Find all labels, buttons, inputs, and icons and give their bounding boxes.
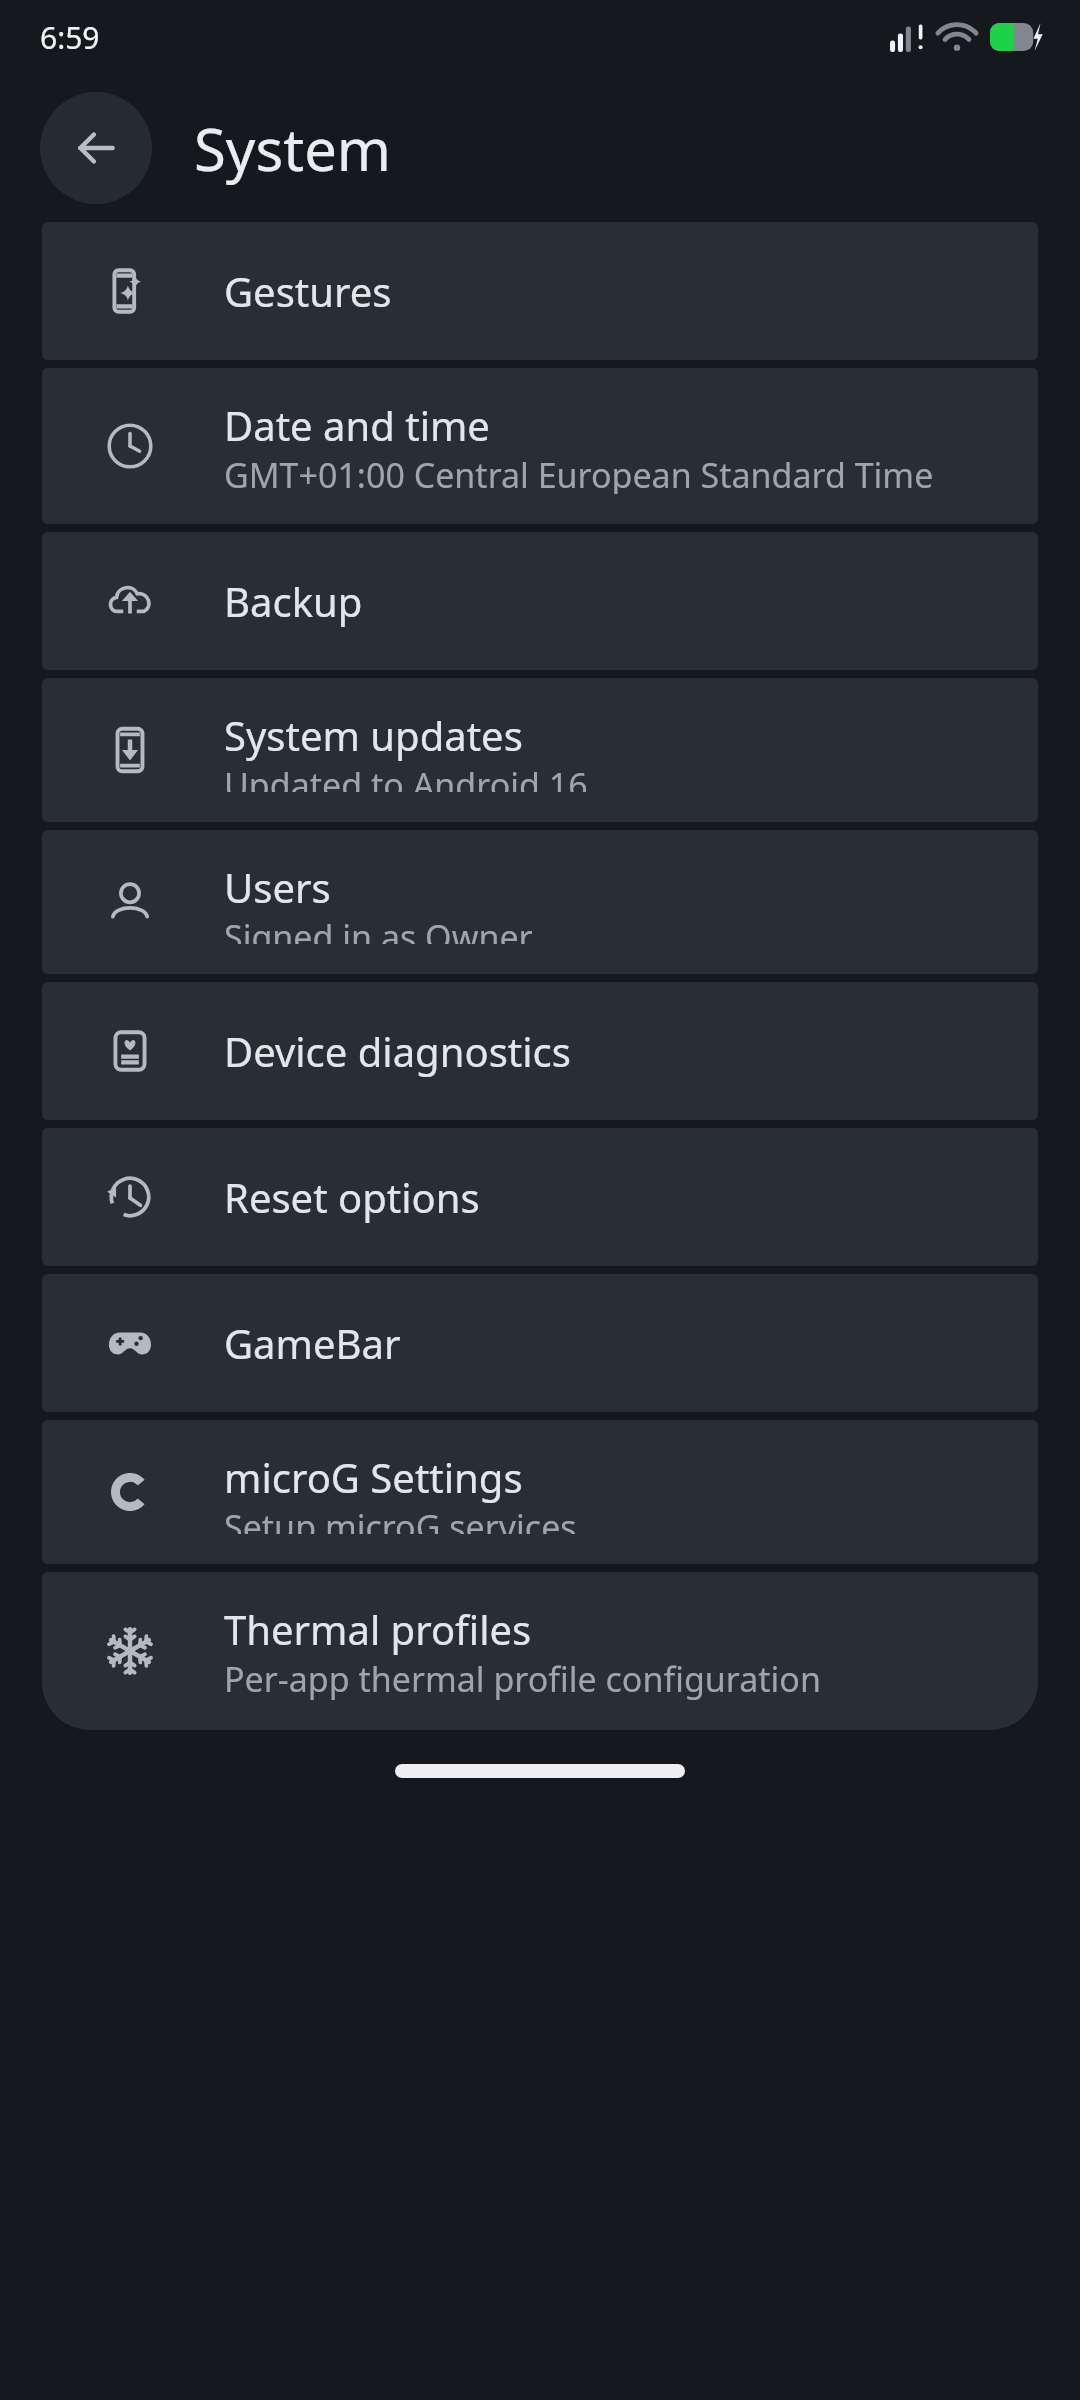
staticText: System updates xyxy=(224,708,523,762)
button[interactable]: Thermal profiles xyxy=(42,1572,1038,1730)
staticText: Date and time xyxy=(224,398,490,452)
staticText: Thermal profiles xyxy=(224,1602,532,1656)
staticText: Signed in as Owner xyxy=(224,914,533,944)
staticText: System xyxy=(194,109,392,188)
staticText: Users xyxy=(224,860,331,914)
staticText: 6:59 xyxy=(40,17,100,58)
button[interactable]: GameBar xyxy=(42,1274,1038,1412)
staticText: Updated to Android 16 xyxy=(224,762,588,792)
button[interactable]: Date and time xyxy=(42,368,1038,524)
button[interactable]: Gestures xyxy=(42,222,1038,360)
button[interactable]: Device diagnostics xyxy=(42,982,1038,1120)
staticText: Setup microG services. xyxy=(224,1504,586,1534)
button[interactable]: System updates xyxy=(42,678,1038,822)
staticText: Device diagnostics xyxy=(224,1024,571,1078)
button[interactable]: microG Settings xyxy=(42,1420,1038,1564)
button[interactable]: Back xyxy=(40,92,152,204)
staticText: Per-app thermal profile configuration xyxy=(224,1656,821,1700)
staticText: GMT+01:00 Central European Standard Time xyxy=(224,452,934,494)
staticText: Backup xyxy=(224,574,363,628)
staticText: Gestures xyxy=(224,264,392,318)
button[interactable]: Users xyxy=(42,830,1038,974)
staticText: microG Settings xyxy=(224,1450,523,1504)
staticText: Reset options xyxy=(224,1170,480,1224)
button[interactable]: Reset options xyxy=(42,1128,1038,1266)
button[interactable]: Backup xyxy=(42,532,1038,670)
staticText: GameBar xyxy=(224,1316,401,1370)
